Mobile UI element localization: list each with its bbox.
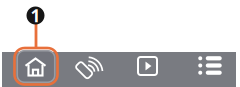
button[interactable]: Remote [68,50,112,84]
button[interactable]: Home [13,50,57,84]
button[interactable]: Playback [125,49,169,83]
staticText: 1 [30,4,40,27]
button[interactable]: List [188,48,232,82]
